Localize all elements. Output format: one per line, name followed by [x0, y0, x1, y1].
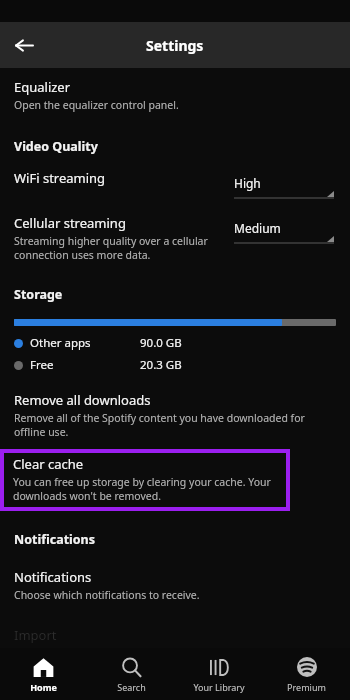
staticText: WiFi streaming	[14, 169, 106, 187]
button[interactable]: High	[234, 175, 334, 204]
staticText: Notifications	[14, 568, 92, 586]
other: Your Library	[208, 656, 229, 678]
staticText: Search	[117, 681, 146, 693]
other: Search	[121, 656, 142, 678]
staticText: 90.0 GB	[140, 335, 182, 351]
button[interactable]: Search	[88, 650, 175, 699]
staticText: Home	[30, 681, 57, 693]
button[interactable]: Notifications	[0, 568, 350, 602]
staticText: High	[234, 175, 261, 191]
button[interactable]: Clear cache	[0, 449, 290, 511]
button[interactable]: Medium	[234, 220, 334, 249]
staticText: Notifications	[14, 531, 96, 548]
staticText: Import	[14, 626, 57, 644]
staticText: Storage	[14, 286, 63, 303]
staticText: Cellular streaming	[14, 214, 126, 232]
staticText: Medium	[234, 220, 281, 236]
button[interactable]: Premium	[263, 650, 350, 699]
staticText: Premium	[287, 681, 326, 693]
staticText: Remove all of the Spotify content you ha…	[14, 411, 330, 439]
other: Home	[33, 656, 54, 678]
other: Premium	[297, 656, 317, 678]
staticText: Streaming higher quality over a cellular…	[14, 234, 226, 262]
staticText: Your Library	[193, 681, 245, 693]
staticText: Settings	[146, 36, 204, 55]
button[interactable]: Your Library	[175, 650, 262, 699]
button[interactable]: Equalizer	[0, 76, 350, 116]
staticText: Free	[30, 357, 140, 373]
staticText: Choose which notifications to receive.	[14, 588, 200, 602]
staticText: Equalizer	[14, 78, 71, 96]
staticText: Other apps	[30, 335, 140, 351]
button[interactable]: Cellular streaming	[0, 214, 350, 264]
staticText: Remove all downloads	[14, 391, 151, 409]
button[interactable]: Back	[6, 27, 42, 63]
staticText: Open the equalizer control panel.	[14, 98, 179, 112]
staticText: You can free up storage by clearing your…	[13, 475, 282, 503]
button[interactable]: Home	[0, 650, 87, 699]
button[interactable]: WiFi streaming	[0, 169, 350, 200]
staticText: 20.3 GB	[140, 357, 182, 373]
staticText: Clear cache	[13, 455, 84, 473]
staticText: Video Quality	[14, 138, 98, 155]
button[interactable]: Remove all downloads	[0, 391, 350, 439]
